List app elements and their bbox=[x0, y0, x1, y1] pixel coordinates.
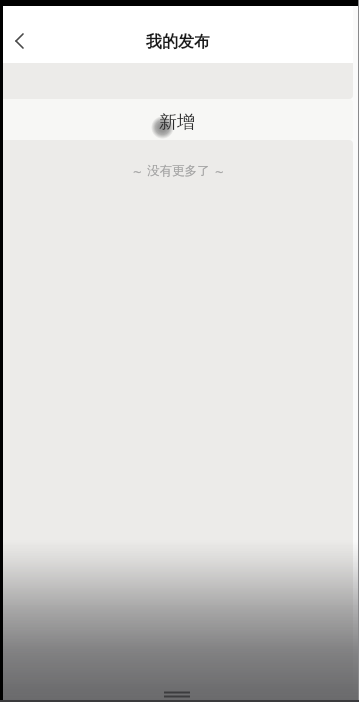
staticText: 我的发布 bbox=[146, 32, 210, 52]
button[interactable]: Back bbox=[3, 20, 36, 63]
staticText: 新增 bbox=[159, 111, 195, 134]
staticText: 没有更多了 bbox=[147, 163, 210, 179]
staticText: ~ bbox=[133, 161, 142, 181]
button[interactable]: 新增 bbox=[3, 99, 353, 140]
staticText: ~ bbox=[215, 161, 224, 181]
